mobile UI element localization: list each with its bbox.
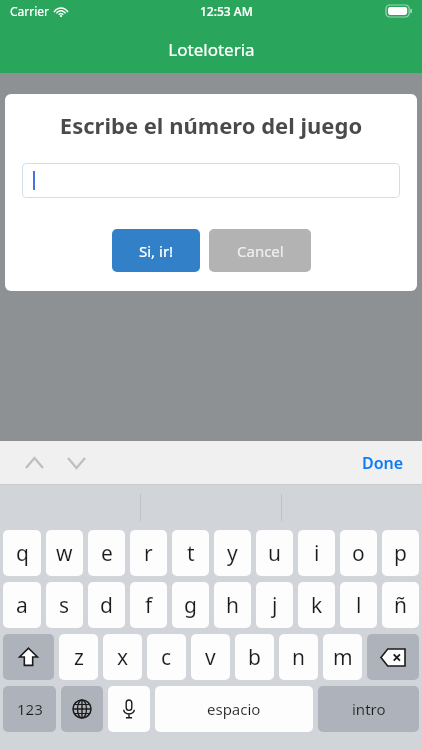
staticText: Carrier: [10, 3, 50, 19]
staticText: y: [227, 539, 238, 568]
staticText: k: [311, 591, 323, 620]
staticText: l: [356, 591, 362, 620]
staticText: r: [144, 539, 153, 568]
staticText: q: [16, 539, 29, 568]
staticText: m: [333, 643, 353, 672]
button[interactable]: Change keyboard: [61, 686, 103, 732]
button[interactable]: v: [191, 634, 230, 680]
staticText: g: [184, 591, 197, 620]
staticText: d: [100, 591, 113, 620]
button[interactable]: o: [340, 530, 377, 576]
button[interactable]: k: [298, 582, 335, 628]
staticText: z: [74, 643, 84, 672]
button[interactable]: Previous field: [14, 443, 54, 483]
staticText: espacio: [207, 699, 261, 719]
button[interactable]: y: [214, 530, 251, 576]
staticText: h: [226, 591, 239, 620]
staticText: intro: [352, 699, 386, 719]
button[interactable]: Si, ir!: [112, 229, 200, 272]
button[interactable]: s: [46, 582, 83, 628]
staticText: b: [248, 643, 261, 672]
staticText: Cancel: [237, 241, 284, 261]
staticText: v: [205, 643, 216, 672]
button[interactable]: Next field: [56, 443, 96, 483]
staticText: o: [352, 539, 365, 568]
button[interactable]: h: [214, 582, 251, 628]
button[interactable]: p: [382, 530, 419, 576]
button[interactable]: Done: [362, 452, 404, 474]
button[interactable]: n: [279, 634, 318, 680]
button[interactable]: l: [340, 582, 377, 628]
button[interactable]: b: [235, 634, 274, 680]
button[interactable]: x: [103, 634, 142, 680]
button[interactable]: intro: [318, 686, 419, 732]
button[interactable]: Dictation: [108, 686, 150, 732]
button[interactable]: Shift: [3, 634, 54, 680]
staticText: t: [187, 539, 195, 568]
staticText: 123: [17, 699, 43, 719]
button[interactable]: t: [172, 530, 209, 576]
button[interactable]: r: [130, 530, 167, 576]
button[interactable]: m: [323, 634, 362, 680]
staticText: Loteloteria: [168, 38, 255, 61]
staticText: s: [59, 591, 70, 620]
button[interactable]: espacio: [155, 686, 313, 732]
button[interactable]: u: [256, 530, 293, 576]
staticText: c: [161, 643, 172, 672]
staticText: ñ: [394, 591, 407, 620]
button[interactable]: ñ: [382, 582, 419, 628]
button[interactable]: c: [147, 634, 186, 680]
button[interactable]: 123: [3, 686, 56, 732]
staticText: n: [292, 643, 305, 672]
staticText: a: [16, 591, 28, 620]
button[interactable]: j: [256, 582, 293, 628]
button[interactable]: a: [3, 582, 41, 628]
staticText: i: [314, 539, 320, 568]
staticText: u: [268, 539, 281, 568]
staticText: Escribe el número del juego: [22, 110, 400, 140]
button[interactable]: w: [46, 530, 83, 576]
staticText: e: [101, 539, 113, 568]
button[interactable]: [22, 163, 400, 198]
staticText: Done: [362, 452, 404, 474]
button[interactable]: d: [88, 582, 125, 628]
staticText: Si, ir!: [139, 241, 174, 261]
button[interactable]: f: [130, 582, 167, 628]
staticText: j: [272, 591, 278, 620]
button[interactable]: z: [59, 634, 98, 680]
button[interactable]: Backspace: [367, 634, 419, 680]
staticText: w: [56, 539, 73, 568]
button[interactable]: q: [3, 530, 41, 576]
staticText: f: [145, 591, 153, 620]
staticText: 12:53 AM: [200, 3, 253, 19]
button[interactable]: g: [172, 582, 209, 628]
button[interactable]: i: [298, 530, 335, 576]
button[interactable]: e: [88, 530, 125, 576]
staticText: x: [117, 643, 129, 672]
staticText: p: [394, 539, 407, 568]
button[interactable]: Cancel: [209, 229, 311, 272]
